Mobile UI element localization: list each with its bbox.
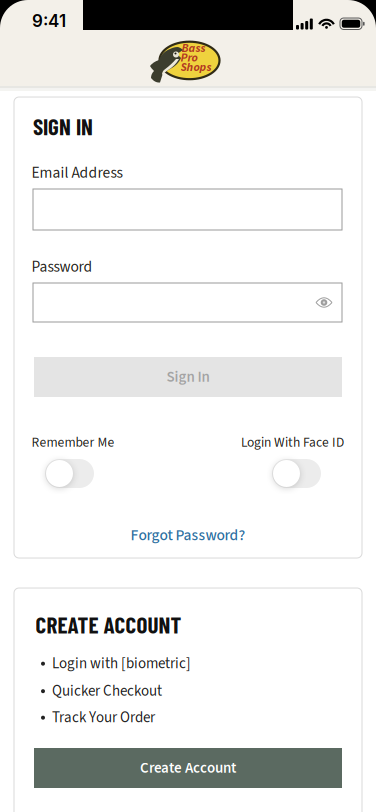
staticText: Quicker Checkout <box>52 680 162 702</box>
staticText: 9:41 <box>32 10 66 31</box>
staticText: Shops <box>180 59 211 76</box>
staticText: Password <box>31 256 92 278</box>
button[interactable]: Bass Pro Shops <box>148 37 228 86</box>
button[interactable]: Create Account <box>34 748 342 788</box>
staticText: Forgot Password? <box>130 524 245 546</box>
button[interactable]: Forgot Password? <box>130 524 245 546</box>
staticText: Remember Me <box>31 433 114 452</box>
staticText: Pro <box>180 49 197 66</box>
button[interactable]: Show password <box>306 283 342 321</box>
button[interactable]: Login With Face ID <box>272 459 321 488</box>
staticText: Sign In <box>166 366 209 388</box>
button[interactable]: Sign In <box>34 357 342 397</box>
button[interactable]: Email Address <box>33 189 342 230</box>
staticText: CREATE ACCOUNT <box>35 611 181 638</box>
button[interactable]: Remember Me <box>45 459 94 488</box>
staticText: Login With Face ID <box>241 433 344 452</box>
staticText: Track Your Order <box>52 707 155 728</box>
staticText: Login with [biometric] <box>52 653 191 674</box>
staticText: Bass <box>181 40 205 57</box>
staticText: Create Account <box>140 757 236 779</box>
staticText: Email Address <box>31 162 122 184</box>
staticText: SIGN IN <box>33 112 93 140</box>
button[interactable]: Password <box>33 283 342 322</box>
